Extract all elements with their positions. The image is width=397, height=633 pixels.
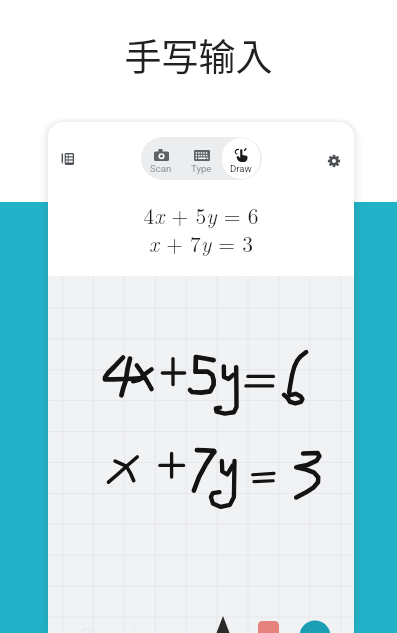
staticText: Draw: [230, 163, 252, 174]
staticText: Scan: [150, 163, 172, 174]
button[interactable]: Scan: [142, 138, 180, 179]
button[interactable]: History: [49, 141, 85, 177]
staticText: 手写输入: [0, 28, 397, 82]
button[interactable]: Type: [182, 138, 220, 179]
button[interactable]: Settings: [316, 143, 352, 179]
button[interactable]: Draw: [222, 138, 260, 179]
staticText: 4x + 5y = 6 x + 7y = 3: [48, 200, 354, 258]
staticText: Type: [191, 163, 212, 174]
